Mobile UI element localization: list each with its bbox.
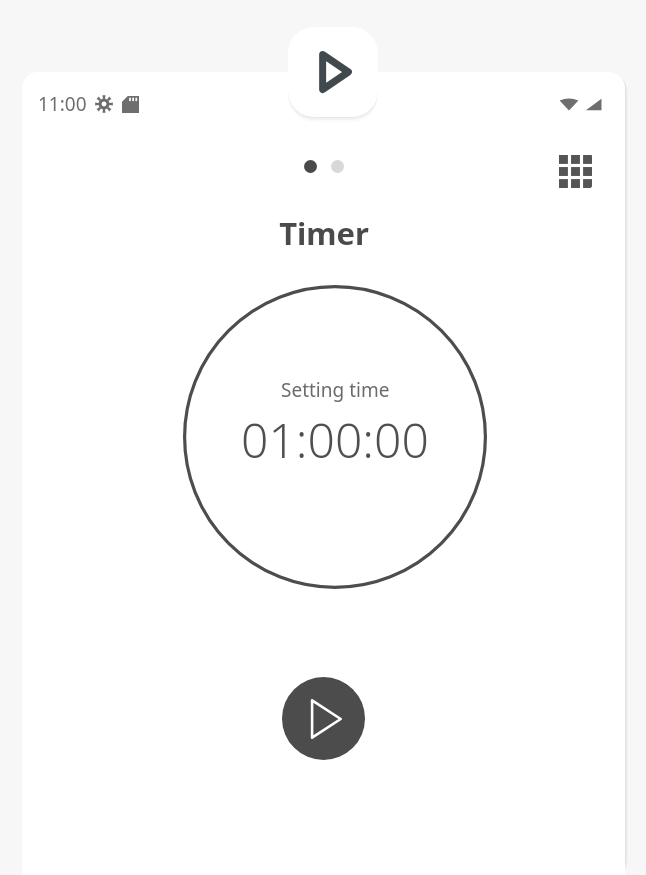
button[interactable]: Apps: [552, 148, 598, 194]
staticText: Timer: [279, 212, 369, 254]
staticText: 11:00: [38, 91, 87, 117]
button[interactable]: Start timer: [282, 677, 365, 760]
staticText: Setting time: [281, 377, 390, 403]
button[interactable]: Set timer: [183, 285, 487, 589]
button[interactable]: Timer app: [288, 27, 378, 117]
staticText: 01:00:00: [241, 407, 429, 472]
